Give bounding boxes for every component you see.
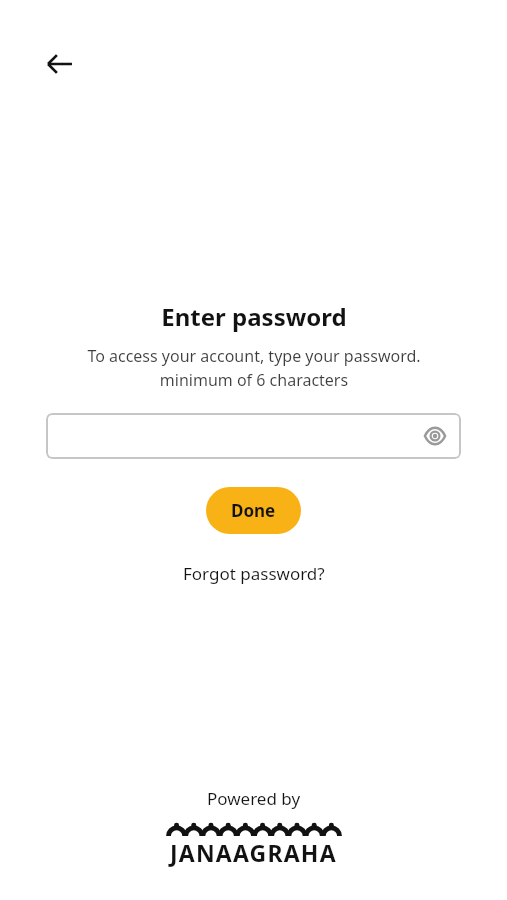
staticText: Done: [231, 499, 276, 522]
staticText: Powered by: [207, 787, 301, 810]
staticText: Forgot password?: [183, 562, 325, 585]
button[interactable]: Forgot password?: [177, 558, 331, 589]
staticText: Enter password: [161, 300, 347, 333]
button[interactable]: Show password: [46, 413, 461, 459]
staticText: JANAAGRAHA: [170, 837, 337, 868]
button[interactable]: Done: [206, 487, 301, 534]
staticText: To access your account, type your passwo…: [87, 345, 421, 391]
button[interactable]: Show password: [419, 420, 451, 452]
button[interactable]: Back: [34, 38, 86, 90]
